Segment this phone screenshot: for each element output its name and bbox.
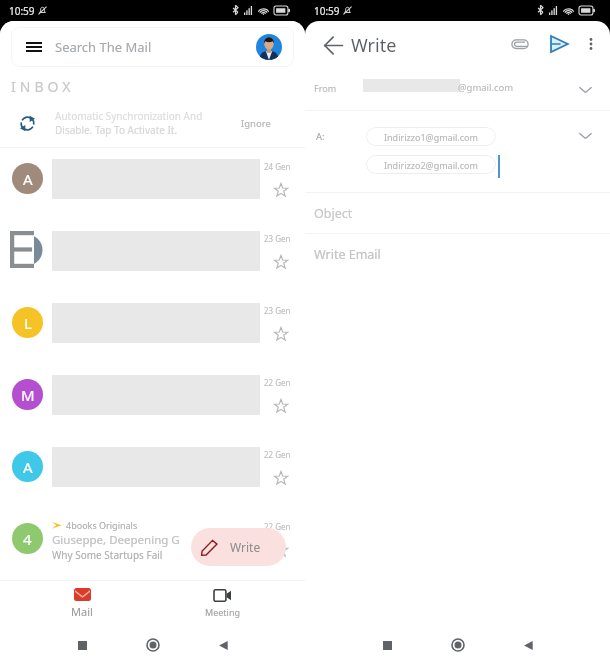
button[interactable]: Recents [70, 633, 94, 657]
button[interactable]: Meeting [152, 581, 293, 625]
other: Star [274, 471, 288, 485]
button[interactable]: More options [576, 29, 606, 59]
other: Star [274, 183, 288, 197]
button[interactable]: A [0, 436, 305, 508]
button[interactable]: Indirizzo1@gmail.com [366, 127, 496, 146]
staticText: A: [316, 130, 325, 143]
staticText: Disable. Tap To Activate It. [55, 123, 178, 137]
staticText: 10:59 [9, 4, 35, 18]
staticText: Object [314, 205, 353, 222]
button[interactable]: Ignore [241, 117, 271, 130]
button[interactable]: M [0, 364, 305, 436]
button[interactable]: Back [211, 633, 235, 657]
staticText: L [24, 313, 32, 333]
staticText: 10:59 [314, 4, 340, 18]
staticText: 4 [23, 529, 32, 549]
button[interactable]: Back [318, 30, 348, 60]
button[interactable]: Write [191, 528, 286, 566]
staticText: 22 Gen [264, 377, 291, 388]
button[interactable]: Attach [505, 29, 535, 59]
staticText: From [314, 82, 337, 94]
staticText: @gmail.com [458, 81, 514, 94]
button[interactable]: Menu [11, 27, 294, 67]
staticText: Giuseppe, Deepening G [52, 532, 180, 548]
staticText: Write Email [314, 246, 381, 263]
button[interactable]: Home [446, 633, 470, 657]
staticText: INBOX [11, 77, 75, 96]
button[interactable]: Indirizzo2@gmail.com [366, 155, 496, 174]
staticText: Search The Mail [55, 38, 152, 56]
button[interactable]: Send [544, 29, 574, 59]
other: Star [274, 399, 288, 413]
staticText: Write [230, 539, 261, 555]
staticText: 22 Gen [264, 449, 291, 460]
button[interactable]: Mail [12, 581, 152, 625]
staticText: A [23, 457, 33, 477]
other: Star [274, 255, 288, 269]
button[interactable]: Home [141, 633, 165, 657]
staticText: A [23, 169, 33, 189]
button[interactable]: L [0, 292, 305, 364]
button[interactable]: Back [516, 633, 540, 657]
button[interactable]: Expand recipients [576, 126, 595, 145]
staticText: M [21, 385, 35, 405]
staticText: 24 Gen [264, 161, 291, 172]
button[interactable]: 23 Gen [0, 220, 305, 292]
staticText: Mail [71, 604, 93, 619]
button[interactable]: Expand sender [576, 80, 595, 99]
staticText: Why Some Startups Fail [52, 548, 163, 562]
staticText: Indirizzo2@gmail.com [384, 159, 478, 171]
staticText: Automatic Synchronization And [55, 109, 203, 123]
staticText: Ignore [241, 117, 271, 130]
button[interactable]: Recents [375, 633, 399, 657]
staticText: Write [351, 33, 397, 58]
button[interactable]: 4 [0, 508, 305, 580]
staticText: Indirizzo1@gmail.com [384, 131, 478, 143]
button[interactable]: A [0, 148, 305, 220]
staticText: 22 Gen [264, 521, 291, 532]
staticText: 23 Gen [264, 233, 291, 244]
button[interactable]: Automatic Synchronization And [0, 105, 305, 141]
button[interactable]: Profile [256, 34, 282, 60]
other: Menu [26, 39, 42, 55]
staticText: Meeting [205, 606, 240, 618]
staticText: 23 Gen [264, 305, 291, 316]
staticText: 4books Originals [66, 519, 138, 531]
other: Star [274, 327, 288, 341]
